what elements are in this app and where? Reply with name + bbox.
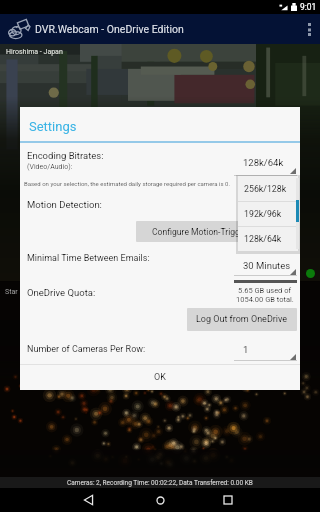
staticText: OneDrive Quota: [27,287,96,298]
button[interactable]: Home [146,488,174,512]
staticText: OK [154,372,166,383]
staticText: 192k/96k [244,209,282,219]
staticText: Settings [29,119,77,134]
button[interactable]: 128k/64k [238,227,298,251]
staticText: Minimal Time Between Emails: [27,253,150,264]
staticText: Hiroshima - Japan [6,48,63,56]
staticText: Motion Detection: [27,199,102,210]
staticText: 128k/64k [243,157,284,168]
button[interactable]: Configure Motion-Triggered Alerts [136,221,297,242]
staticText: Cameras: 2, Recording Time: 00:02:22, Da… [67,479,253,487]
staticText: Star [5,288,18,296]
staticText: 128k/64k [244,234,282,244]
button[interactable]: 256k/128k [238,176,298,201]
staticText: 256k/128k [244,184,287,194]
staticText: Number of Cameras Per Row: [27,344,146,355]
button[interactable]: Recent apps [214,488,242,512]
staticText: DVR.Webcam - OneDrive Edition [35,23,184,35]
staticText: (Video/Audio): [27,163,73,171]
staticText: 1054.00 GB total. [236,295,294,304]
staticText: Configure Motion-Triggered Alerts [152,227,282,237]
button[interactable]: Back [74,488,102,512]
staticText: 30 Minutes [243,260,291,271]
staticText: Based on your selection, the estimated d… [24,180,230,187]
staticText: Encoding Bitrates: [27,150,104,161]
button[interactable]: Log Out from OneDrive [187,308,297,331]
staticText: 5.65 GB used of [238,286,292,295]
staticText: 9:01 [300,2,317,12]
button[interactable]: 192k/96k [238,202,298,226]
staticText: 1 [243,344,249,355]
staticText: Log Out from OneDrive [196,314,288,325]
button[interactable]: OK [20,365,300,390]
button[interactable]: More options [298,14,320,44]
